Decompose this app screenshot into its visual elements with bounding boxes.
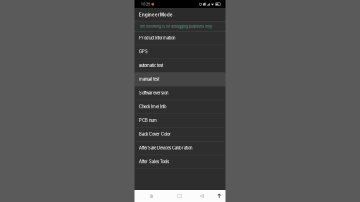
staticText: automatic test <box>139 63 163 68</box>
button[interactable]: Home <box>134 190 169 202</box>
button[interactable]: automatic test <box>134 59 225 73</box>
staticText: GPS <box>139 49 148 54</box>
staticText: EngineerMode <box>139 12 173 18</box>
button[interactable]: Share <box>191 190 213 202</box>
staticText: Back Cover Color <box>139 132 171 137</box>
button[interactable]: Check Imei Info <box>134 100 225 114</box>
button[interactable]: Product Information <box>134 31 225 45</box>
button[interactable]: Back Cover Color <box>134 128 225 141</box>
button[interactable]: PCB num <box>134 114 225 128</box>
button[interactable]: manual test <box>134 73 225 86</box>
staticText: Product Information <box>139 35 175 40</box>
button[interactable]: Softwareversion <box>134 86 225 100</box>
staticText: manual test <box>139 77 159 82</box>
button[interactable]: Recents <box>169 190 191 202</box>
button[interactable]: GPS <box>134 45 225 59</box>
staticText: Softwareversion <box>139 90 168 95</box>
staticText: Check Imei Info <box>139 104 166 109</box>
staticText: PCB num <box>139 118 157 123</box>
staticText: After Sales Tools <box>139 159 169 164</box>
button[interactable]: After Sales Tools <box>134 155 225 169</box>
button[interactable]: Scroll to top <box>213 190 225 202</box>
staticText: The following is for debugging purposes … <box>139 24 212 29</box>
staticText: AfterSale Devices Calibration <box>139 145 192 150</box>
staticText: 10:25 <box>141 2 150 6</box>
button[interactable]: AfterSale Devices Calibration <box>134 141 225 155</box>
